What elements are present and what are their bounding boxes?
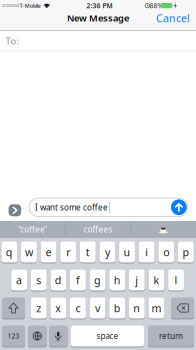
staticText: To:	[5, 35, 19, 47]
button[interactable]: Dictate	[49, 325, 67, 347]
button[interactable]: To:	[0, 31, 196, 51]
staticText: k	[153, 273, 159, 287]
staticText: c	[75, 301, 80, 315]
staticText: 2:36 PM	[86, 1, 112, 10]
staticText: 123	[7, 332, 19, 340]
button[interactable]: r	[60, 241, 76, 263]
staticText: p	[182, 245, 189, 259]
button[interactable]: a	[11, 269, 27, 291]
staticText: b	[114, 301, 121, 315]
staticText: 88%	[150, 1, 164, 10]
staticText: g	[94, 273, 101, 287]
button[interactable]: b	[109, 297, 125, 319]
staticText: r	[66, 245, 70, 259]
button[interactable]: u	[119, 241, 135, 263]
staticText: t	[86, 245, 90, 259]
staticText: f	[76, 273, 80, 287]
staticText: return	[159, 331, 183, 341]
staticText: d	[55, 273, 62, 287]
button[interactable]: h	[109, 269, 125, 291]
staticText: m	[151, 301, 161, 315]
button[interactable]: “coffee”	[1, 221, 65, 238]
button[interactable]: e	[41, 241, 56, 263]
button[interactable]: g	[90, 269, 105, 291]
button[interactable]: l	[168, 269, 184, 291]
button[interactable]: Cancel	[156, 10, 190, 26]
button[interactable]: Next keyboard	[28, 325, 46, 347]
staticText: o	[163, 245, 169, 259]
staticText: h	[114, 273, 121, 287]
button[interactable]: space	[71, 325, 144, 347]
staticText: i	[145, 245, 148, 259]
staticText: n	[133, 301, 140, 315]
button[interactable]: j	[129, 269, 145, 291]
staticText: I want some coffee	[35, 202, 108, 213]
staticText: “coffee”	[18, 224, 47, 235]
button[interactable]: z	[31, 297, 47, 319]
button[interactable]: m	[148, 297, 164, 319]
button[interactable]: v	[90, 297, 105, 319]
button[interactable]: o	[158, 241, 174, 263]
button[interactable]: c	[70, 297, 86, 319]
button[interactable]: Message field	[29, 198, 188, 216]
button[interactable]: Delete	[171, 297, 194, 319]
staticText: j	[135, 273, 138, 287]
staticText: y	[105, 245, 110, 259]
button[interactable]: d	[50, 269, 66, 291]
staticText: q	[6, 245, 13, 259]
staticText: T-Mobile	[20, 2, 41, 9]
staticText: x	[55, 301, 61, 315]
staticText: s	[36, 273, 41, 287]
staticText: e	[45, 245, 51, 259]
staticText: z	[36, 301, 41, 315]
staticText: Cancel	[156, 11, 190, 25]
button[interactable]: s	[31, 269, 47, 291]
button[interactable]: 123	[2, 325, 25, 347]
button[interactable]: w	[21, 241, 37, 263]
button[interactable]: Coffee emoji	[131, 221, 195, 238]
button[interactable]: n	[129, 297, 145, 319]
button[interactable]: k	[148, 269, 164, 291]
button[interactable]: Send	[171, 199, 187, 215]
staticText: New Message	[67, 12, 129, 24]
button[interactable]: t	[80, 241, 96, 263]
button[interactable]: y	[99, 241, 115, 263]
button[interactable]: x	[50, 297, 66, 319]
button[interactable]: return	[148, 325, 194, 347]
button[interactable]: i	[139, 241, 154, 263]
button[interactable]: coffees	[66, 221, 130, 238]
staticText: a	[16, 273, 22, 287]
staticText: space	[96, 331, 118, 341]
button[interactable]: Expand apps	[9, 204, 21, 216]
button[interactable]: Shift	[2, 297, 25, 319]
button[interactable]: f	[70, 269, 86, 291]
button[interactable]: q	[1, 241, 17, 263]
button[interactable]: p	[178, 241, 194, 263]
staticText: v	[95, 301, 100, 315]
staticText: coffees	[83, 224, 112, 235]
staticText: u	[123, 245, 130, 259]
staticText: w	[25, 245, 33, 259]
staticText: l	[175, 273, 178, 287]
